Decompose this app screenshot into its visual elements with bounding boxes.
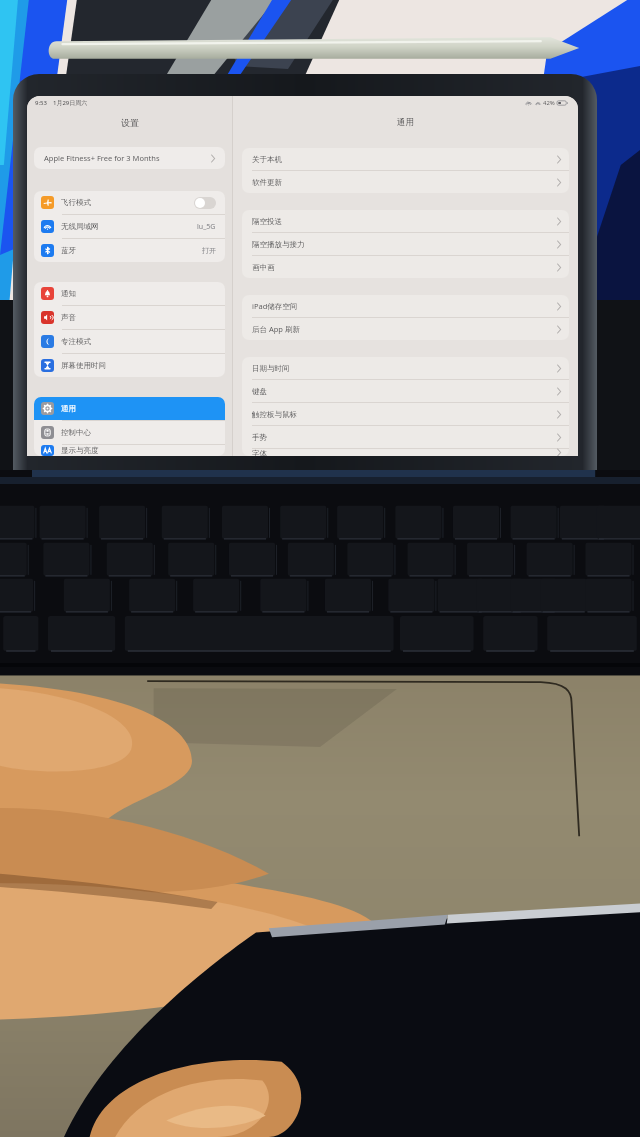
- button[interactable]: 控制中心: [34, 421, 225, 444]
- button[interactable]: 通用: [34, 397, 225, 420]
- button[interactable]: 后台 App 刷新: [242, 318, 569, 340]
- button[interactable]: 字体: [242, 449, 569, 456]
- button[interactable]: 通知: [34, 282, 225, 305]
- button[interactable]: 屏幕使用时间: [34, 354, 225, 377]
- staticText: 通用: [61, 404, 76, 413]
- button[interactable]: 软件更新: [242, 171, 569, 193]
- staticText: 隔空播放与接力: [252, 240, 305, 249]
- staticText: 隔空投送: [252, 217, 282, 226]
- staticText: 通知: [61, 289, 76, 298]
- button[interactable]: 飞行模式: [34, 191, 225, 214]
- button[interactable]: 键盘: [242, 380, 569, 402]
- staticText: 设置: [121, 117, 139, 128]
- button[interactable]: 隔空播放与接力: [242, 233, 569, 255]
- button[interactable]: 无线局域网: [34, 215, 225, 238]
- staticText: 无线局域网: [61, 222, 99, 231]
- staticText: 蓝牙: [61, 246, 76, 255]
- staticText: 1月29日周六: [53, 99, 88, 107]
- staticText: iPad储存空间: [252, 301, 298, 311]
- button[interactable]: 声音: [34, 306, 225, 329]
- button[interactable]: 日期与时间: [242, 357, 569, 379]
- staticText: Apple Fitness+ Free for 3 Months: [44, 153, 160, 163]
- staticText: 键盘: [252, 387, 267, 396]
- button[interactable]: Apple Fitness+ Free for 3 Months: [34, 147, 225, 169]
- staticText: 屏幕使用时间: [61, 361, 106, 370]
- staticText: 飞行模式: [61, 198, 91, 207]
- button[interactable]: 手势: [242, 426, 569, 448]
- button[interactable]: 飞行模式开关: [194, 197, 216, 209]
- button[interactable]: 触控板与鼠标: [242, 403, 569, 425]
- button[interactable]: 隔空投送: [242, 210, 569, 232]
- staticText: lu_5G: [197, 222, 216, 232]
- staticText: 42%: [543, 99, 555, 107]
- button[interactable]: 画中画: [242, 256, 569, 278]
- staticText: 触控板与鼠标: [252, 410, 297, 419]
- staticText: 关于本机: [252, 155, 282, 164]
- staticText: 画中画: [252, 263, 275, 272]
- staticText: 显示与亮度: [61, 446, 99, 455]
- staticText: 打开: [202, 246, 216, 255]
- button[interactable]: 蓝牙: [34, 239, 225, 262]
- staticText: 专注模式: [61, 337, 91, 346]
- staticText: 声音: [61, 313, 76, 322]
- staticText: 手势: [252, 433, 267, 442]
- staticText: 控制中心: [61, 428, 91, 437]
- button[interactable]: 显示与亮度: [34, 445, 225, 456]
- staticText: 9:53: [35, 99, 47, 107]
- button[interactable]: 关于本机: [242, 148, 569, 170]
- staticText: 日期与时间: [252, 364, 290, 373]
- staticText: 字体: [252, 449, 267, 456]
- button[interactable]: 专注模式: [34, 330, 225, 353]
- staticText: 软件更新: [252, 178, 282, 187]
- staticText: 通用: [397, 117, 414, 128]
- staticText: 后台 App 刷新: [252, 324, 300, 334]
- button[interactable]: iPad储存空间: [242, 295, 569, 317]
